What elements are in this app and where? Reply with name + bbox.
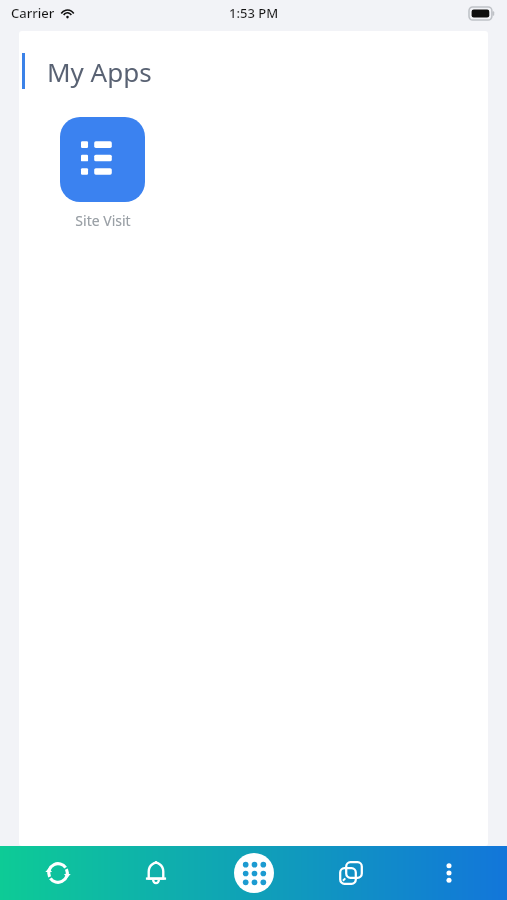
staticText: Site Visit — [75, 211, 131, 230]
staticText: My Apps — [47, 54, 152, 89]
button[interactable]: Sync — [18, 846, 98, 900]
button[interactable]: Copy — [311, 846, 391, 900]
button[interactable]: More options — [409, 846, 489, 900]
button[interactable]: All apps — [214, 846, 294, 900]
staticText: Carrier — [11, 4, 55, 22]
button[interactable]: Site Visit — [60, 117, 145, 230]
button[interactable]: Notifications — [116, 846, 196, 900]
staticText: 1:53 PM — [229, 4, 279, 22]
